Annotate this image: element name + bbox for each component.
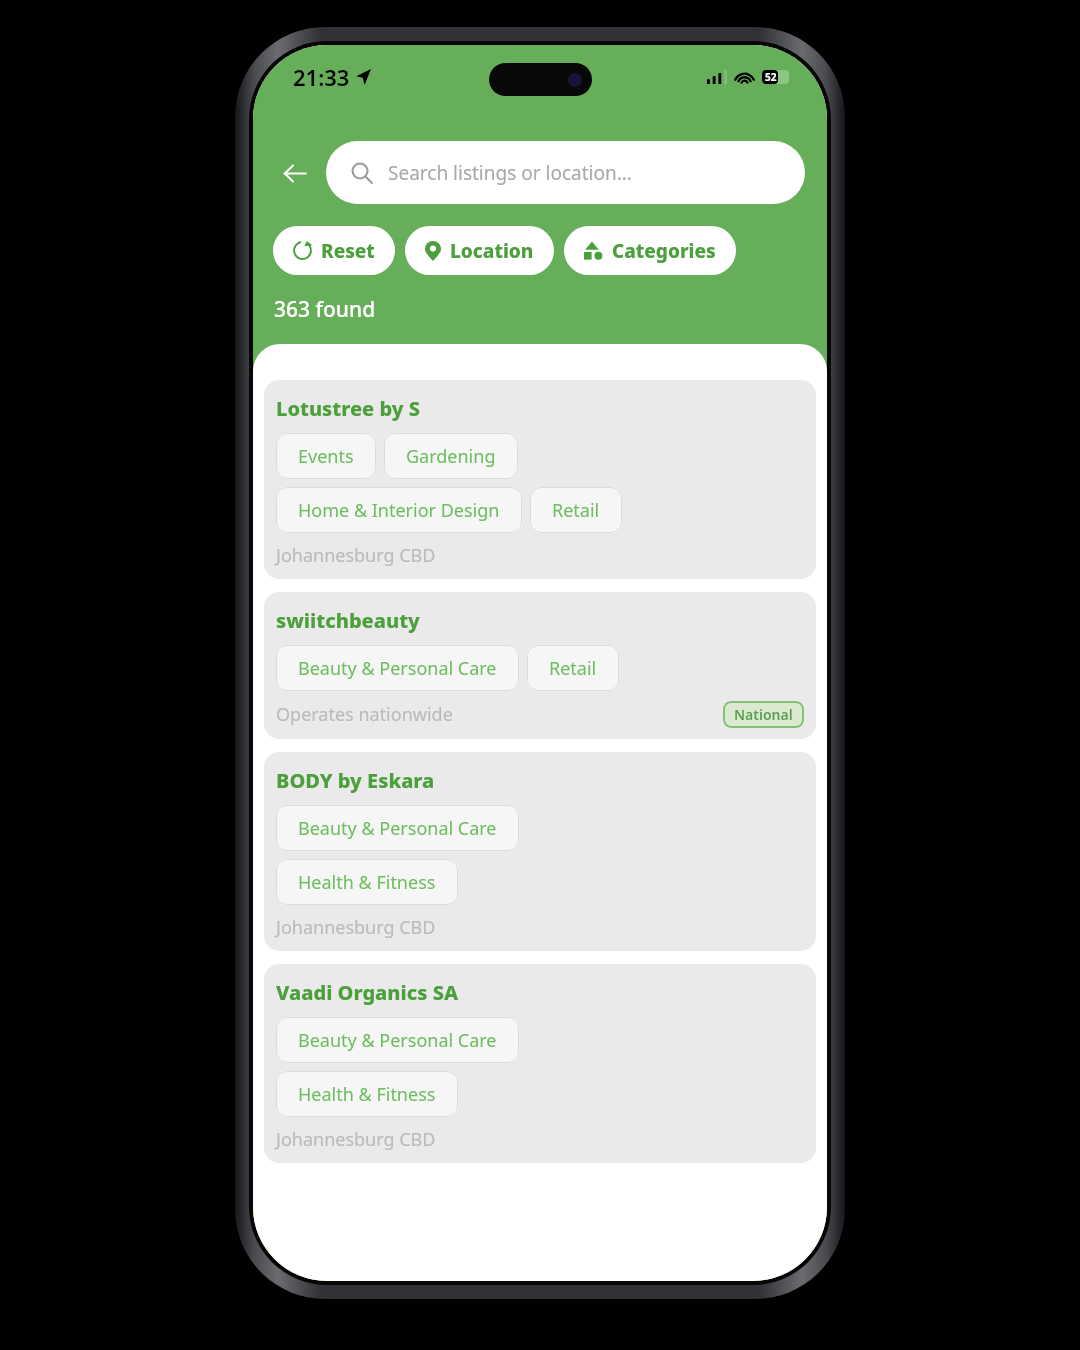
button[interactable]: Beauty & Personal Care [276,805,519,851]
staticText: Search listings or location... [388,160,632,186]
button[interactable]: Reset [273,226,395,275]
button[interactable]: BODY by Eskara [264,752,816,951]
staticText: National [734,705,793,724]
button[interactable]: Retail [530,487,622,533]
button[interactable]: Health & Fitness [276,1071,458,1117]
button[interactable]: Home & Interior Design [276,487,522,533]
button[interactable]: Retail [527,645,619,691]
button[interactable]: Beauty & Personal Care [276,1017,519,1063]
staticText: Categories [612,238,716,264]
staticText: Location [450,238,534,264]
staticText: Health & Fitness [298,870,436,895]
staticText: 52 [765,70,777,84]
staticText: 363 found [274,295,376,324]
staticText: Operates nationwide [276,702,453,727]
staticText: Health & Fitness [298,1082,436,1107]
staticText: Johannesburg CBD [276,915,436,940]
staticText: Johannesburg CBD [276,543,436,568]
button[interactable]: Lotustree by S [264,380,816,579]
staticText: Retail [552,498,600,523]
button[interactable]: Back [271,150,317,196]
staticText: 21:33 [293,62,350,92]
staticText: Lotustree by S [276,395,420,422]
button[interactable]: Location [405,226,554,275]
staticText: swiitchbeauty [276,607,420,634]
staticText: Johannesburg CBD [276,1127,436,1152]
staticText: Events [298,444,354,469]
staticText: Gardening [406,444,496,469]
button[interactable]: Vaadi Organics SA [264,964,816,1163]
staticText: Retail [549,656,597,681]
button[interactable]: Search listings or location... [326,141,805,204]
button[interactable]: Beauty & Personal Care [276,645,519,691]
staticText: Beauty & Personal Care [298,656,497,681]
staticText: Beauty & Personal Care [298,1028,497,1053]
button[interactable]: Gardening [384,433,518,479]
button[interactable]: swiitchbeauty [264,592,816,739]
staticText: Home & Interior Design [298,498,500,523]
staticText: BODY by Eskara [276,767,435,794]
button[interactable]: Events [276,433,376,479]
staticText: Beauty & Personal Care [298,816,497,841]
button[interactable]: Categories [564,226,736,275]
staticText: Vaadi Organics SA [276,979,459,1006]
button[interactable]: Health & Fitness [276,859,458,905]
staticText: Reset [321,238,375,264]
